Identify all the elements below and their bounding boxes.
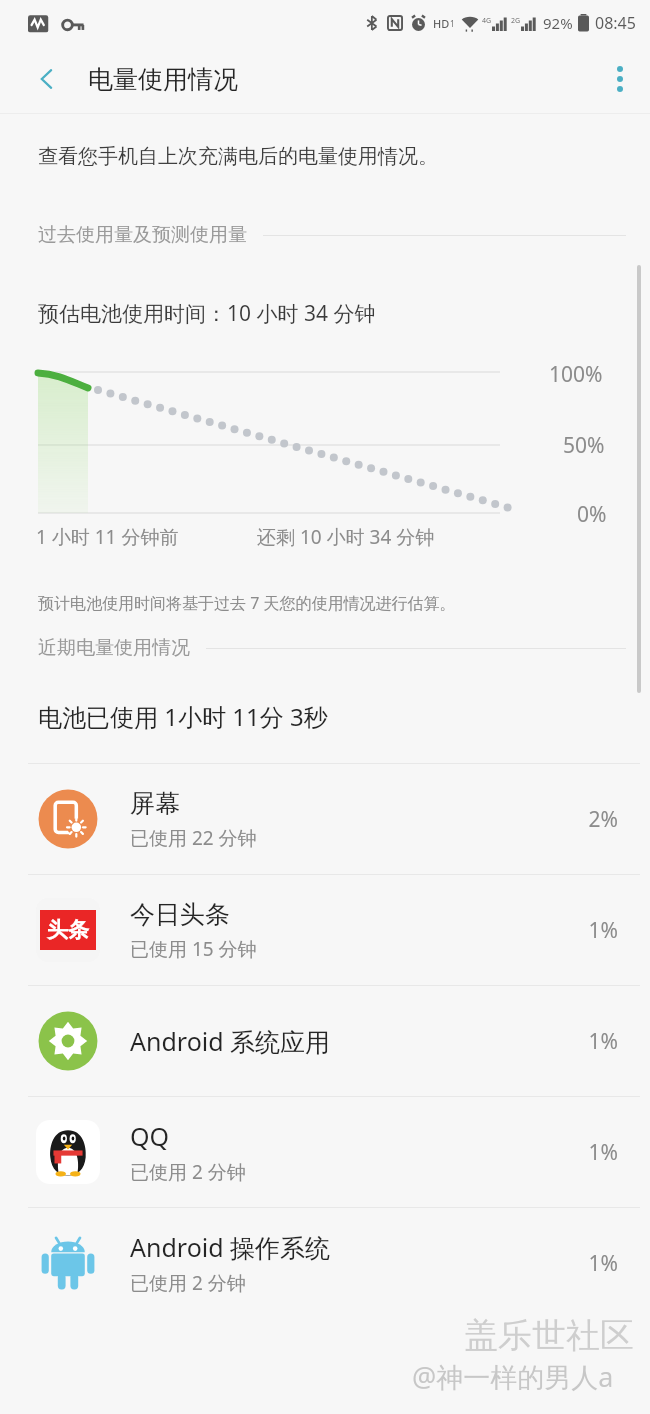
staticText: 0%: [577, 500, 607, 529]
staticText: 4G: [482, 16, 492, 26]
staticText: 1%: [588, 916, 618, 945]
staticText: 电池已使用 1小时 11分 3秒: [38, 700, 328, 733]
staticText: 今日头条: [130, 899, 230, 930]
staticText: 盖乐世社区: [464, 1314, 634, 1357]
staticText: 电量使用情况: [88, 64, 238, 95]
staticText: 已使用 22 分钟: [130, 825, 257, 851]
staticText: QQ: [130, 1119, 170, 1153]
staticText: 2G: [511, 16, 521, 26]
button[interactable]: Back: [18, 45, 76, 113]
staticText: 查看您手机自上次充满电后的电量使用情况。: [38, 144, 438, 169]
staticText: 1: [450, 18, 455, 29]
staticText: 还剩 10 小时 34 分钟: [257, 524, 435, 550]
staticText: Android 操作系统: [130, 1230, 331, 1264]
button[interactable]: Android 操作系统: [0, 1208, 650, 1318]
staticText: 100%: [549, 360, 603, 389]
staticText: 50%: [563, 431, 605, 460]
button[interactable]: More options: [590, 45, 650, 113]
staticText: 预估电池使用时间：10 小时 34 分钟: [38, 299, 376, 328]
staticText: 已使用 15 分钟: [130, 936, 257, 962]
staticText: 1 小时 11 分钟前: [36, 524, 179, 550]
staticText: 08:45: [595, 12, 636, 34]
staticText: 头条: [47, 917, 89, 943]
staticText: 近期电量使用情况: [38, 636, 190, 660]
staticText: 1%: [588, 1249, 618, 1278]
staticText: 92%: [543, 13, 573, 33]
staticText: 1%: [588, 1027, 618, 1056]
staticText: Android 系统应用: [130, 1024, 331, 1058]
staticText: 预计电池使用时间将基于过去 7 天您的使用情况进行估算。: [38, 592, 456, 614]
staticText: 过去使用量及预测使用量: [38, 223, 247, 247]
button[interactable]: QQ: [0, 1097, 650, 1207]
button[interactable]: Android 系统应用: [0, 986, 650, 1096]
button[interactable]: 屏幕: [0, 764, 650, 874]
staticText: 已使用 2 分钟: [130, 1159, 246, 1185]
staticText: 屏幕: [130, 788, 180, 819]
staticText: HD: [433, 16, 450, 31]
staticText: 已使用 2 分钟: [130, 1270, 246, 1296]
staticText: @神一样的男人a: [412, 1358, 614, 1395]
button[interactable]: 头条: [0, 875, 650, 985]
staticText: 1%: [588, 1138, 618, 1167]
staticText: 2%: [588, 805, 618, 834]
